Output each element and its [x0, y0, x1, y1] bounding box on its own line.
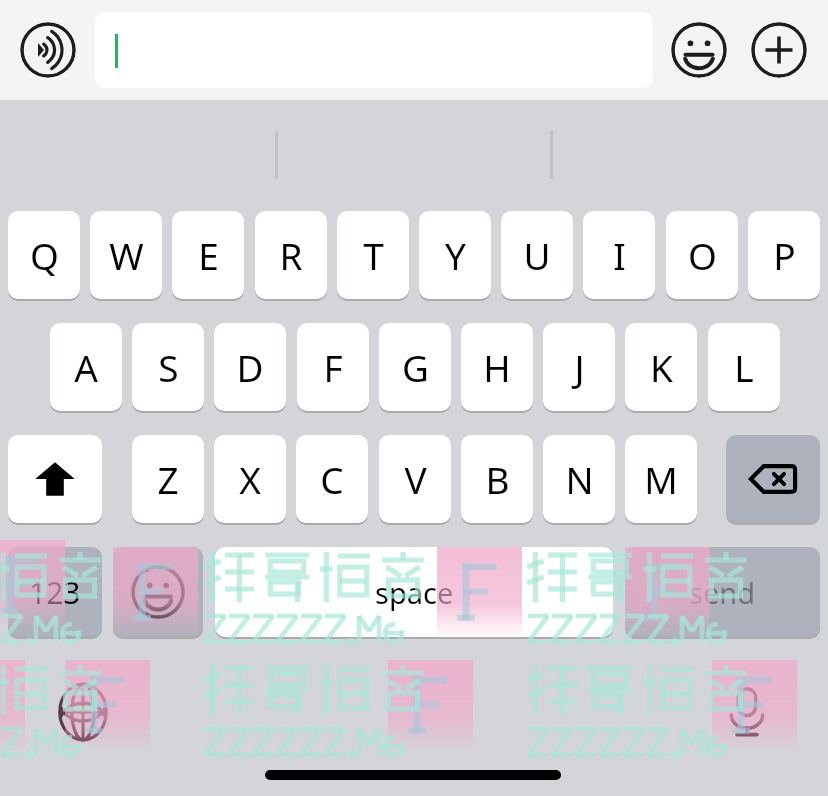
button[interactable]: S	[132, 323, 204, 411]
staticText: N	[565, 454, 594, 504]
button[interactable]: C	[296, 435, 368, 523]
button[interactable]: E	[172, 211, 244, 299]
button[interactable]: K	[625, 323, 697, 411]
staticText: E	[198, 230, 219, 280]
button[interactable]: Q	[8, 211, 80, 299]
button[interactable]: J	[543, 323, 615, 411]
staticText: V	[404, 454, 427, 504]
staticText: C	[320, 454, 344, 504]
staticText: F	[323, 342, 343, 392]
staticText: G	[402, 342, 429, 392]
staticText: U	[523, 230, 551, 280]
staticText: send	[689, 573, 756, 612]
staticText: R	[279, 230, 303, 280]
button[interactable]: H	[461, 323, 533, 411]
button[interactable]: V	[379, 435, 451, 523]
button[interactable]: Y	[419, 211, 491, 299]
button[interactable]: Add attachment	[751, 22, 807, 78]
button[interactable]: L	[708, 323, 780, 411]
button[interactable]: Emoji keyboard	[113, 547, 203, 637]
button[interactable]: Shift	[8, 435, 102, 523]
staticText: Y	[445, 230, 466, 280]
staticText: B	[485, 454, 510, 504]
button[interactable]: N	[543, 435, 615, 523]
staticText: 123	[29, 572, 81, 613]
staticText: Z	[157, 454, 179, 504]
button[interactable]: D	[214, 323, 286, 411]
staticText: H	[483, 342, 511, 392]
button[interactable]: Backspace	[726, 435, 820, 523]
staticText: X	[239, 454, 261, 504]
button[interactable]: R	[255, 211, 327, 299]
button[interactable]: I	[583, 211, 655, 299]
button[interactable]: A	[50, 323, 122, 411]
button[interactable]: Space	[215, 547, 613, 637]
staticText: Q	[30, 230, 59, 280]
staticText: P	[773, 230, 796, 280]
staticText: T	[363, 230, 384, 280]
button[interactable]: B	[461, 435, 533, 523]
button[interactable]: M	[625, 435, 697, 523]
staticText: A	[74, 342, 98, 392]
button[interactable]: Numbers	[8, 547, 102, 637]
button[interactable]: G	[379, 323, 451, 411]
button[interactable]: W	[90, 211, 162, 299]
staticText: O	[688, 230, 717, 280]
staticText: D	[236, 342, 264, 392]
button[interactable]: Voice message	[20, 22, 76, 78]
staticText: K	[650, 342, 673, 392]
staticText: S	[158, 342, 179, 392]
staticText: space	[375, 573, 454, 612]
button[interactable]: T	[337, 211, 409, 299]
button[interactable]: U	[501, 211, 573, 299]
button[interactable]: O	[666, 211, 738, 299]
button[interactable]: F	[297, 323, 369, 411]
button[interactable]: Send	[625, 547, 820, 637]
staticText: L	[734, 342, 754, 392]
button[interactable]: P	[748, 211, 820, 299]
staticText: W	[109, 230, 144, 280]
staticText: J	[574, 342, 585, 392]
button[interactable]: Switch language	[48, 677, 118, 747]
button[interactable]	[95, 12, 653, 88]
button[interactable]: Dictation	[712, 677, 782, 747]
button[interactable]: Z	[132, 435, 204, 523]
staticText: M	[644, 454, 678, 504]
staticText: I	[613, 230, 626, 280]
button[interactable]: X	[214, 435, 286, 523]
button[interactable]: Emoji	[671, 22, 727, 78]
